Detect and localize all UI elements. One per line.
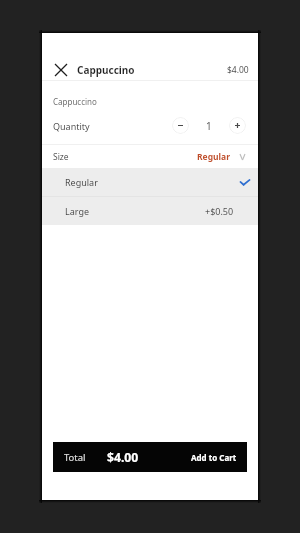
button[interactable]: Total — [53, 442, 247, 472]
staticText: Regular — [197, 151, 230, 163]
staticText: Quantity — [53, 120, 90, 132]
staticText: +$0.50 — [205, 205, 234, 217]
staticText: $4.00 — [107, 449, 139, 466]
button[interactable]: Regular — [42, 168, 258, 196]
button[interactable]: Close — [52, 61, 70, 79]
staticText: Add to Cart — [191, 452, 237, 463]
staticText: Cappuccino — [77, 63, 135, 77]
staticText: Total — [64, 451, 86, 464]
button[interactable]: Size — [42, 145, 258, 168]
staticText: Cappuccino — [53, 96, 97, 107]
button[interactable]: Large — [42, 197, 258, 225]
staticText: Large — [65, 205, 90, 217]
button[interactable]: Increase quantity — [229, 117, 246, 134]
staticText: 1 — [206, 119, 212, 133]
button[interactable]: Decrease quantity — [172, 117, 189, 134]
staticText: Size — [53, 151, 69, 163]
staticText: $4.00 — [227, 64, 249, 76]
staticText: Regular — [65, 176, 98, 188]
